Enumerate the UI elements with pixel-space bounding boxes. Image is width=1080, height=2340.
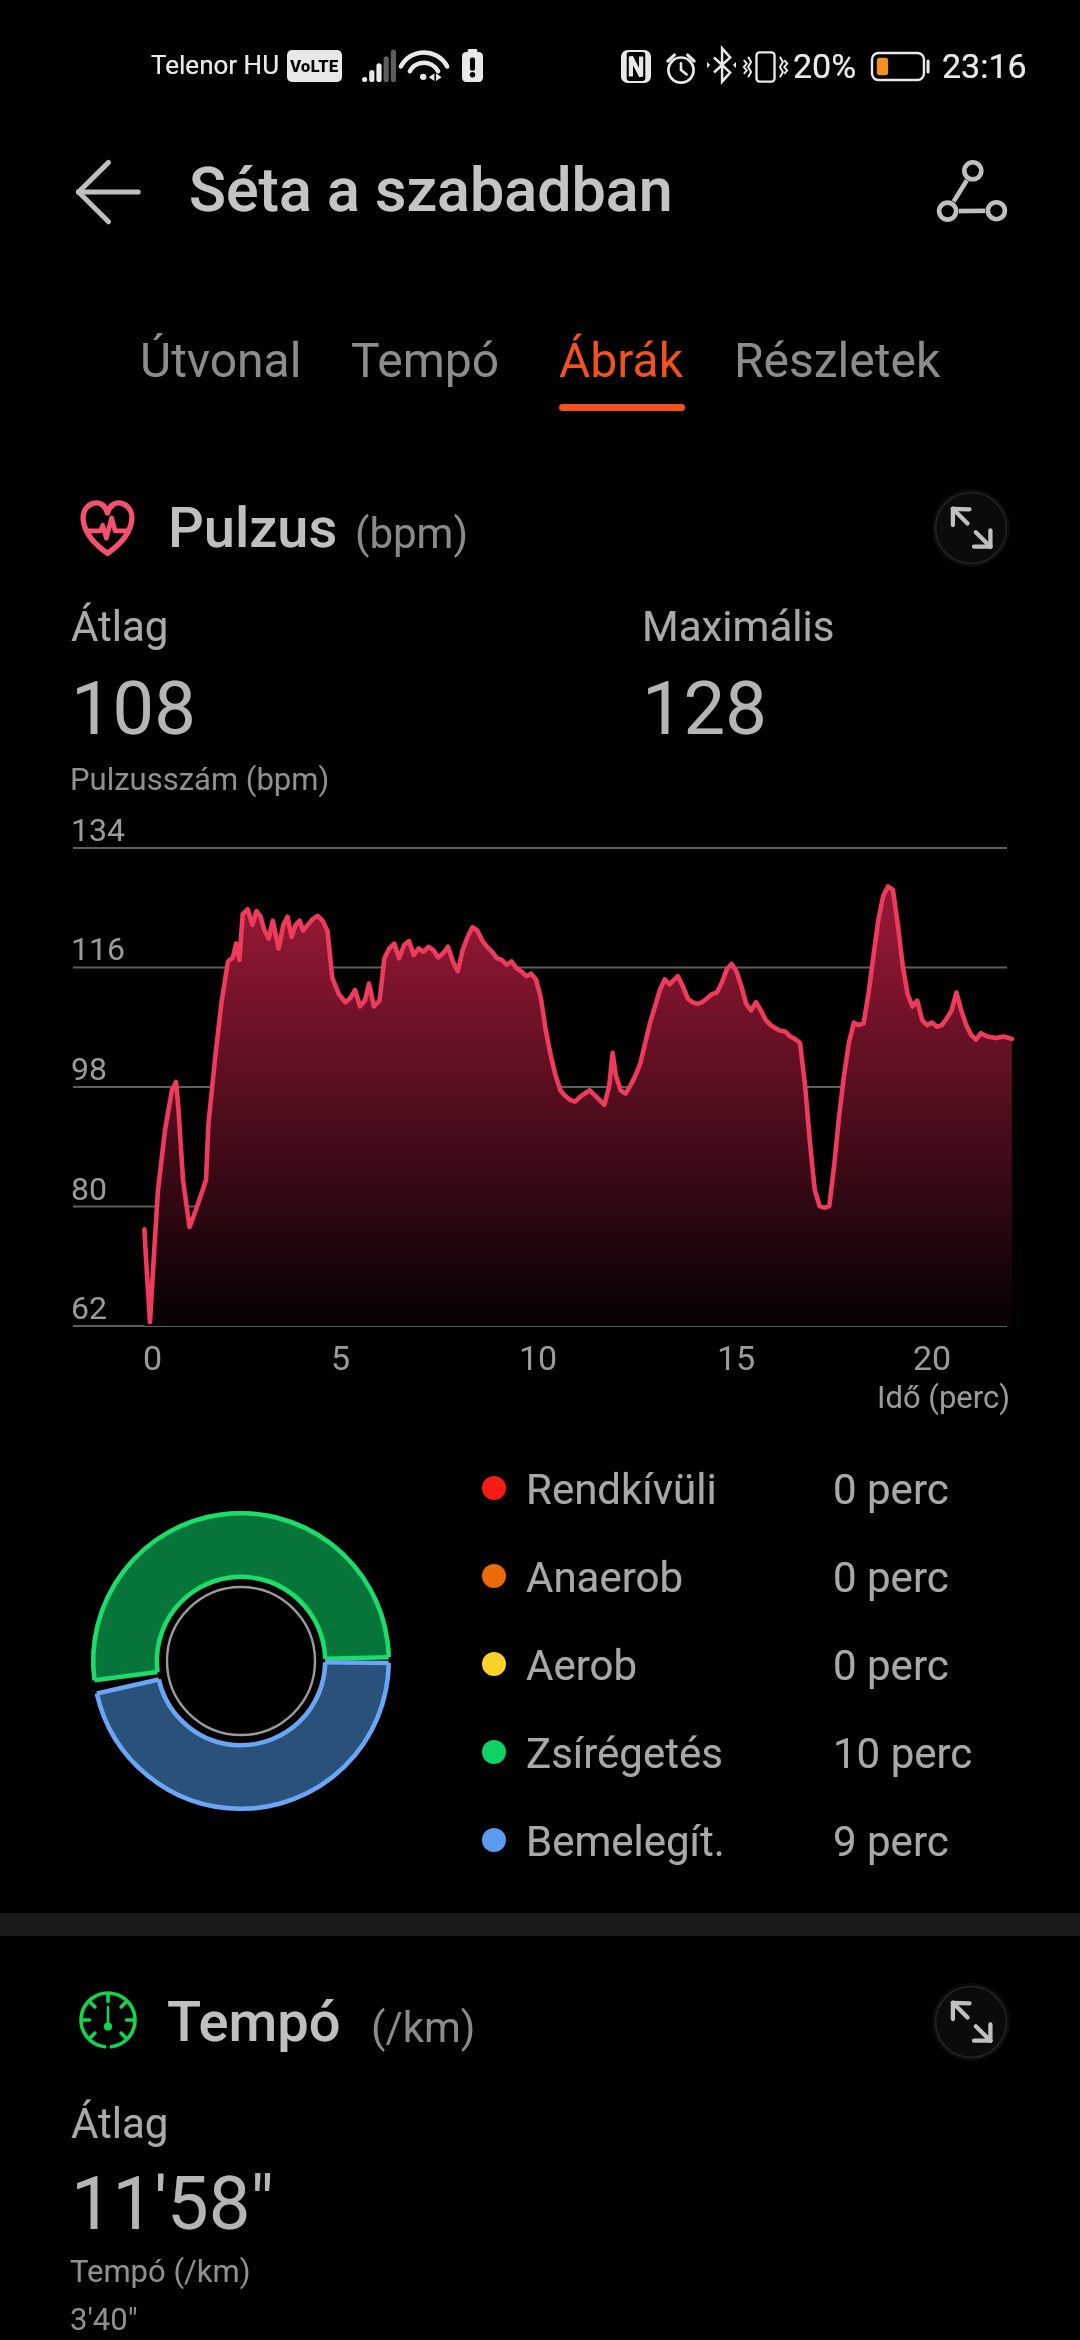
staticText: Tempó <box>167 1989 341 2055</box>
staticText: (bpm) <box>355 509 468 558</box>
staticText: Ábrák <box>559 332 684 388</box>
staticText: Bemelegít. <box>526 1817 725 1866</box>
button[interactable] <box>470 1449 1000 1533</box>
staticText: 0 perc <box>833 1641 949 1690</box>
button[interactable] <box>470 1625 1000 1709</box>
staticText: (/km) <box>371 2003 476 2052</box>
staticText: 15 <box>717 1338 756 1378</box>
button[interactable] <box>536 300 712 426</box>
staticText: Séta a szabadban <box>189 154 673 225</box>
staticText: Anaerob <box>526 1553 684 1602</box>
button[interactable] <box>470 1801 1000 1885</box>
button[interactable] <box>711 300 965 426</box>
staticText: 0 perc <box>833 1553 949 1602</box>
button[interactable] <box>470 1537 1000 1621</box>
staticText: 10 perc <box>833 1729 973 1778</box>
staticText: 0 <box>143 1338 163 1378</box>
staticText: Pulzus <box>168 495 338 561</box>
staticText: Zsírégetés <box>526 1729 723 1778</box>
staticText: Útvonal <box>140 332 302 388</box>
staticText: 20% <box>793 46 857 86</box>
button[interactable]: Back <box>70 160 146 236</box>
staticText: Átlag <box>71 2099 169 2148</box>
button[interactable]: Expand <box>932 1983 1010 2061</box>
button[interactable]: Share <box>938 155 1010 227</box>
staticText: 116 <box>71 930 125 968</box>
staticText: 134 <box>71 811 125 849</box>
staticText: 11'58" <box>71 2160 274 2247</box>
staticText: Rendkívüli <box>526 1465 717 1514</box>
staticText: 98 <box>71 1050 107 1088</box>
staticText: 5 <box>331 1338 351 1378</box>
staticText: 20 <box>913 1338 952 1378</box>
staticText: 9 perc <box>833 1817 949 1866</box>
staticText: 80 <box>71 1170 107 1208</box>
button[interactable]: Expand <box>932 489 1010 567</box>
staticText: 0 perc <box>833 1465 949 1514</box>
staticText: Idő (perc) <box>877 1379 1010 1415</box>
staticText: 3'40" <box>70 2301 138 2337</box>
button[interactable] <box>117 300 326 426</box>
staticText: Tempó <box>351 332 500 388</box>
staticText: 108 <box>71 665 196 752</box>
staticText: 10 <box>519 1338 558 1378</box>
staticText: Telenor HU <box>151 50 280 80</box>
button[interactable] <box>328 300 526 426</box>
staticText: Aerob <box>526 1641 638 1690</box>
staticText: Pulzusszám (bpm) <box>70 761 330 797</box>
button[interactable] <box>470 1713 1000 1797</box>
staticText: 62 <box>71 1289 107 1327</box>
staticText: 23:16 <box>942 46 1027 86</box>
staticText: Tempó (/km) <box>70 2253 251 2289</box>
staticText: 128 <box>642 665 767 752</box>
staticText: Átlag <box>71 602 169 651</box>
staticText: Részletek <box>734 332 941 388</box>
staticText: Maximális <box>642 602 835 651</box>
staticText: VoLTE <box>290 56 339 76</box>
